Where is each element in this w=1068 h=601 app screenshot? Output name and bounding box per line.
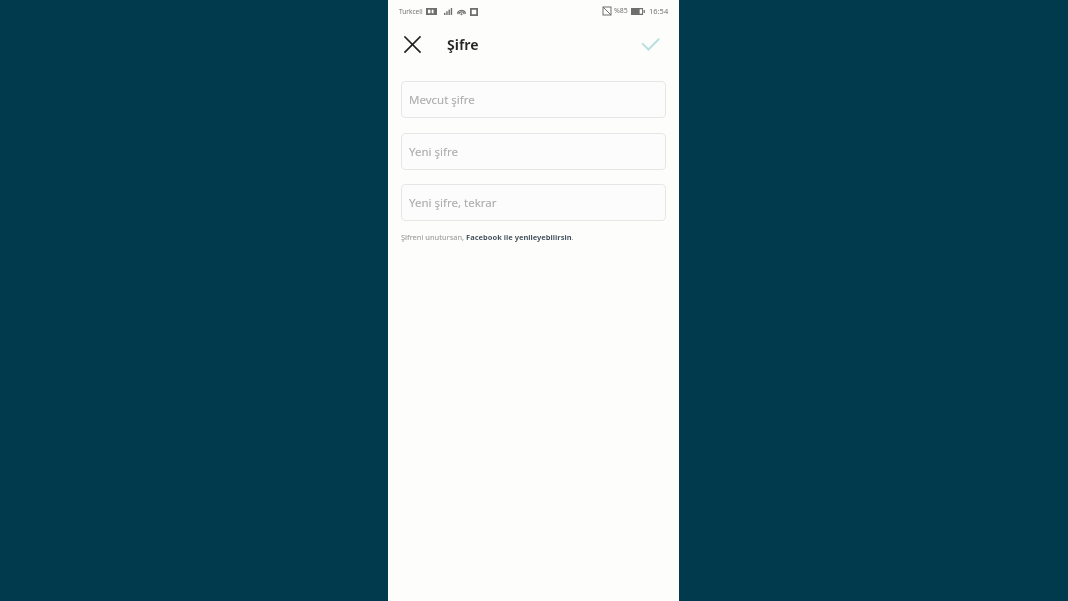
staticText: Şifre bbox=[447, 35, 479, 54]
staticText: 16:54 bbox=[649, 6, 669, 16]
button[interactable]: Yeni şifre, tekrar bbox=[401, 184, 666, 221]
button[interactable]: Kaydet bbox=[635, 29, 665, 59]
staticText: Turkcell bbox=[399, 7, 423, 16]
staticText: Şifreni unutursan, Facebook ile yenileye… bbox=[401, 232, 574, 242]
button[interactable]: Yeni şifre bbox=[401, 133, 666, 170]
staticText: Yeni şifre, tekrar bbox=[409, 195, 497, 211]
staticText: Mevcut şifre bbox=[409, 92, 475, 108]
button[interactable]: Şifreni unutursan, Facebook ile yenileye… bbox=[401, 232, 666, 242]
button[interactable]: Mevcut şifre bbox=[401, 81, 666, 118]
staticText: %85 bbox=[614, 6, 628, 16]
button[interactable]: Kapat bbox=[397, 29, 427, 59]
staticText: Yeni şifre bbox=[409, 144, 458, 160]
